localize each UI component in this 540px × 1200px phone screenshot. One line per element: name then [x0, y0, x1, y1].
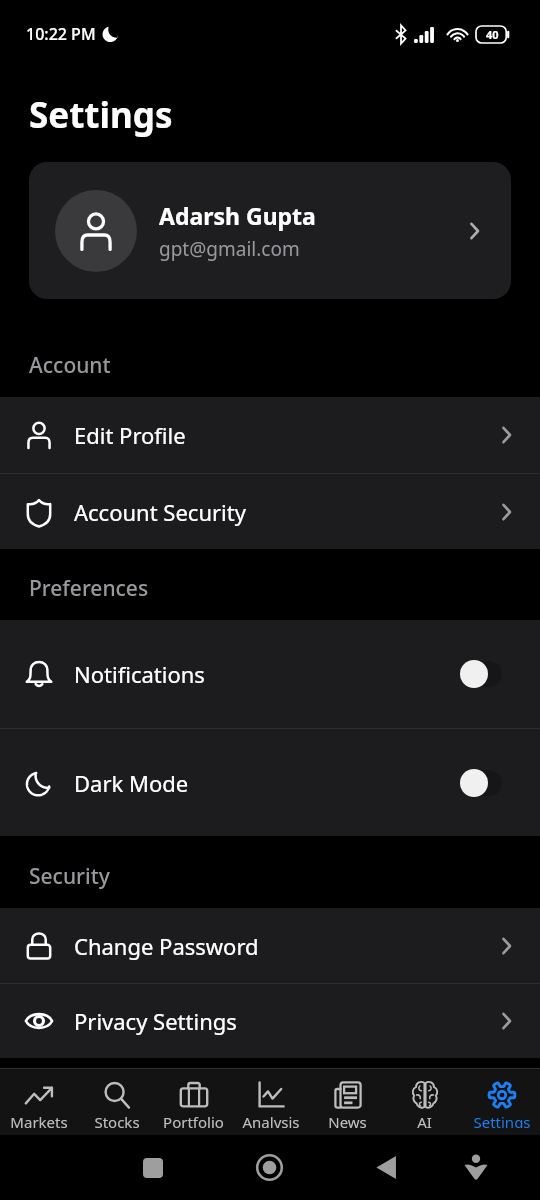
staticText: Analysis — [242, 1112, 300, 1128]
button[interactable]: Analysis — [232, 1069, 309, 1135]
button[interactable]: Stocks — [78, 1069, 155, 1135]
staticText: Stocks — [94, 1112, 140, 1128]
button[interactable]: Account Security — [0, 474, 540, 549]
staticText: Privacy Settings — [74, 1006, 237, 1036]
staticText: Preferences — [29, 574, 149, 603]
staticText: AI — [417, 1112, 432, 1128]
staticText: Settings — [29, 91, 173, 139]
button[interactable]: Dark Mode — [0, 729, 540, 836]
staticText: Edit Profile — [74, 420, 186, 450]
staticText: Adarsh Gupta — [159, 200, 316, 231]
button[interactable]: Home — [256, 1154, 283, 1181]
staticText: Account — [29, 351, 111, 380]
button[interactable]: Toggle Notifications — [460, 659, 502, 689]
button[interactable]: AI — [386, 1069, 463, 1135]
button[interactable]: News — [309, 1069, 386, 1135]
staticText: 10:22 PM — [26, 23, 96, 45]
staticText: Notifications — [74, 659, 205, 689]
button[interactable]: Portfolio — [155, 1069, 232, 1135]
button[interactable]: Recents — [143, 1158, 163, 1178]
staticText: Dark Mode — [74, 768, 189, 798]
button[interactable]: Toggle Dark Mode — [460, 768, 502, 798]
button[interactable]: Notifications — [0, 620, 540, 728]
staticText: Account Security — [74, 497, 246, 527]
button[interactable]: Back — [376, 1156, 397, 1179]
staticText: 40 — [486, 27, 499, 42]
staticText: Settings — [473, 1112, 531, 1128]
button[interactable]: Markets — [0, 1069, 78, 1135]
staticText: News — [328, 1112, 367, 1128]
staticText: Security — [29, 862, 110, 891]
button[interactable]: Hide keyboard — [464, 1154, 488, 1180]
button[interactable]: Settings — [463, 1069, 540, 1135]
staticText: Portfolio — [163, 1112, 224, 1128]
button[interactable]: Privacy Settings — [0, 984, 540, 1058]
staticText: gpt@gmail.com — [159, 236, 300, 262]
staticText: Change Password — [74, 931, 259, 961]
button[interactable]: Edit Profile — [0, 397, 540, 473]
staticText: Markets — [10, 1112, 68, 1128]
button[interactable]: Change Password — [0, 908, 540, 983]
button[interactable]: Adarsh Gupta — [29, 162, 511, 299]
